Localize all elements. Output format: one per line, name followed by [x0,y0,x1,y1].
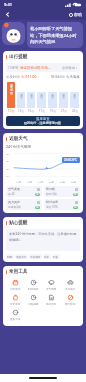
staticText: 日程提醒 [28,302,39,305]
button[interactable]: 最 佳 时 段 [7,82,15,108]
staticText: 较弱 2级 [46,192,57,196]
button[interactable]: 钓鱼 [52,254,60,259]
staticText: 13点 [18,109,24,113]
staticText: 适 宜 [30,93,33,99]
button[interactable]: 适 宜 [59,92,68,108]
button[interactable]: 日历查询 [6,278,24,291]
staticText: 东南风2级 [8,205,21,209]
staticText: 路况查询 [46,302,57,305]
button[interactable]: 防晒 [6,254,14,259]
staticText: 防晒 [7,255,13,258]
staticText: 出发时间 [6,75,20,79]
staticText: 洗车 [44,255,50,258]
staticText: 风力风向 [8,200,20,204]
button[interactable]: 出行助手 [61,278,80,291]
staticText: 常用工具 [9,269,28,275]
staticText: 近期天气 [9,136,28,142]
button[interactable]: 23:00 26°C [62,157,80,163]
staticText: 时钟闹钟 [28,287,39,290]
staticText: 出行提醒 [9,54,28,60]
staticText: 紫外线 [46,187,55,191]
button[interactable]: 温度适宜 [6,116,80,126]
staticText: 19点 [50,109,56,113]
staticText: 门牌号 [8,66,19,70]
staticText: 未来24小时内无雨，可外出活动。注意做好防晒措施哦～ [9,232,77,242]
staticText: 限行查询 [65,302,76,305]
button[interactable]: 帮助 [68,11,83,18]
staticText: 更多工具 [10,317,21,320]
staticText: 日历查询 [10,287,21,290]
button[interactable]: 风力风向 [6,199,42,210]
staticText: 适 宜 [20,93,23,99]
staticText: 良 42 [8,192,15,196]
button[interactable]: 适宜出行 [15,254,28,259]
staticText: 海淀区西北旺东路... [20,65,51,70]
staticText: 21点 [61,109,67,113]
button[interactable]: 日程提醒 [24,293,42,306]
staticText: 检小阳探听了天气情报站，下面我来播报24小时内的天气情况 [30,26,80,44]
staticText: 优 [74,193,77,196]
staticText: 空气质量 [8,187,20,191]
staticText: 不宜晨练 [30,255,41,258]
staticText: 30° [6,152,10,155]
button[interactable]: 洗车 [43,254,51,259]
staticText: 推荐出行，注意携带薄外套 [24,121,62,125]
staticText: 行李清单 [10,302,21,305]
staticText: 温度适宜 [36,117,50,121]
staticText: 20时 [49,180,55,183]
staticText: 23:00 26°C [64,158,78,162]
button[interactable]: 限行查询 [61,293,80,306]
staticText: 适 宜 [51,93,54,99]
button[interactable]: 适 宜 [70,92,79,108]
staticText: 15° [6,174,10,177]
button[interactable]: 不宜晨练 [29,254,42,259]
button[interactable]: 紫外线 [44,186,80,197]
staticText: 9:41 [4,2,12,7]
button[interactable]: 空气质量 [6,186,42,197]
staticText: 优 [36,206,39,209]
button[interactable]: 更多工具 [6,308,24,321]
staticText: 02时 [71,180,77,183]
staticText: 今天选择 [66,75,80,79]
button[interactable]: 返回 [3,10,12,19]
staticText: 出行助手 [65,287,76,290]
button[interactable]: 门牌号 [6,63,80,72]
staticText: 适 宜 [62,93,65,99]
staticText: 今天11:00 [21,74,37,79]
staticText: 适 宜 [40,93,43,99]
staticText: 优 [36,193,39,196]
button[interactable]: 适 宜 [37,92,46,108]
button[interactable]: 适 宜 [27,92,35,108]
staticText: 24小时天气预报 [6,144,32,149]
staticText: 17时 [38,180,44,183]
button[interactable]: 天气预警 [42,278,61,291]
staticText: 11时 [16,180,22,183]
staticText: 23点 [72,109,78,113]
staticText: 贴心提醒 [9,220,28,226]
button[interactable]: 适 宜 [17,92,25,108]
staticText: 帮助 [74,12,82,17]
staticText: 25° [6,159,10,162]
staticText: 适 宜 [73,93,76,99]
staticText: 17点 [39,109,45,113]
staticText: 天气预警 [46,287,57,290]
staticText: › [37,75,39,79]
button[interactable]: 适 宜 [48,92,57,108]
staticText: 23时 [60,180,66,183]
button[interactable]: 路况查询 [42,293,61,306]
staticText: 钓鱼 [53,255,59,258]
button[interactable]: 未来24小时内无雨，可外出活动。注意做好防晒措施哦～ [6,229,80,251]
button[interactable]: 时钟闹钟 [24,278,42,291]
staticText: 全部收起 › [62,65,78,70]
staticText: 最 佳 时 段 [10,83,13,95]
staticText: 适宜出行 [16,255,27,258]
button[interactable]: 检小阳探听了天气情报站，下面我来播报24小时内的天气情况 [27,22,83,48]
staticText: 适宜 55% [46,205,58,209]
staticText: 优 [74,206,77,209]
staticText: 14时 [27,180,33,183]
staticText: 15点 [28,109,34,113]
staticText: 相对湿度 [46,200,58,204]
button[interactable]: 行李清单 [6,293,24,306]
button[interactable]: 相对湿度 [44,199,80,210]
staticText: 20° [6,167,10,170]
